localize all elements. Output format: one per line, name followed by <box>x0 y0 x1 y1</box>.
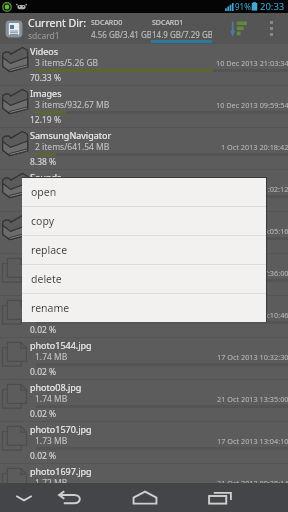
staticText: 0.02 % <box>30 324 57 336</box>
staticText: 1 Oct 2013 20:18:42 <box>221 142 288 152</box>
button[interactable]: photo1433.jpg <box>0 254 288 296</box>
staticText: copy <box>31 214 54 228</box>
button[interactable]: photo1697.jpg <box>0 464 288 506</box>
staticText: 1 Oct 2013 11:02:12 <box>221 184 288 194</box>
staticText: 1.59 % <box>30 198 57 210</box>
staticText: 91% <box>235 1 251 12</box>
staticText: 1.72 MB <box>35 477 68 489</box>
staticText: 0.02 % <box>30 492 57 504</box>
staticText: 14.9 GB/7.29 GB <box>152 29 212 40</box>
button[interactable]: rename <box>22 294 266 322</box>
staticText: Images <box>30 87 62 99</box>
button[interactable]: photo08.jpg <box>0 380 288 422</box>
staticText: 0.02 % <box>30 366 57 378</box>
button[interactable]: open <box>22 178 266 206</box>
staticText: 70.33 % <box>30 72 61 84</box>
staticText: 10 Dec 2013 09:59:54 <box>216 100 288 110</box>
staticText: SDCARD0 <box>91 18 123 28</box>
staticText: replace <box>31 243 68 257</box>
staticText: 1.74 MB <box>35 309 68 321</box>
staticText: Videos <box>30 45 59 57</box>
button[interactable]: replace <box>22 236 266 264</box>
button[interactable]: Download <box>0 212 288 254</box>
button[interactable]: copy <box>22 207 266 235</box>
staticText: photo1570.jpg <box>30 423 92 435</box>
button[interactable]: photo1501.jpg <box>0 296 288 338</box>
staticText: open <box>31 185 57 199</box>
staticText: 1.75 MB <box>35 267 68 279</box>
staticText: 1.73 MB <box>35 435 68 447</box>
button[interactable]: Home <box>126 483 164 512</box>
staticText: 0.02 % <box>30 450 57 462</box>
button[interactable]: Current Dir: <box>0 13 90 44</box>
staticText: photo08.jpg <box>30 381 82 393</box>
staticText: Sounds <box>30 171 62 183</box>
button[interactable]: Images <box>0 86 288 128</box>
staticText: 21 Oct 2013 09:28:14 <box>217 478 288 488</box>
staticText: 20:33 <box>260 0 285 13</box>
staticText: 4.56 GB/3.41 GB <box>91 29 151 40</box>
staticText: 17 Oct 2013 15:10:46 <box>217 310 288 320</box>
staticText: 3 items/5.26 GB <box>35 57 99 69</box>
button[interactable]: photo1544.jpg <box>0 338 288 380</box>
staticText: photo1697.jpg <box>30 465 92 477</box>
staticText: 1.74 MB <box>35 393 68 405</box>
staticText: photo1501.jpg <box>30 297 92 309</box>
staticText: rename <box>31 301 70 315</box>
button[interactable]: Back <box>51 483 89 512</box>
staticText: delete <box>31 272 62 286</box>
button[interactable]: SamsungNavigator <box>0 128 288 170</box>
staticText: 17 Oct 2013 13:04:10 <box>217 436 288 446</box>
staticText: SDCARD1 <box>152 18 184 28</box>
staticText: photo1544.jpg <box>30 339 92 351</box>
button[interactable]: SDCARD0 <box>90 13 151 44</box>
staticText: 12.19 % <box>30 114 61 126</box>
staticText: 5 items/121.59 MB <box>35 183 110 195</box>
button[interactable]: Sort <box>224 13 254 44</box>
button[interactable]: Sounds <box>0 170 288 212</box>
staticText: 1 items/2.31 MB <box>35 225 100 237</box>
staticText: 21 Oct 2013 13:35:00 <box>217 394 288 404</box>
button[interactable]: SDCARD1 <box>151 13 212 44</box>
staticText: 0.02 % <box>30 408 57 420</box>
staticText: Current Dir: <box>28 16 87 30</box>
button[interactable]: Videos <box>0 44 288 86</box>
staticText: 10 Dec 2013 21:03:34 <box>216 58 288 68</box>
staticText: sdcard1 <box>28 30 60 42</box>
button[interactable]: Recent apps <box>201 483 239 512</box>
staticText: 0.02 % <box>30 282 57 294</box>
button[interactable]: Hide keyboard <box>4 483 44 512</box>
staticText: 17 Oct 2013 10:32:30 <box>217 352 288 362</box>
staticText: 1.74 MB <box>35 351 68 363</box>
staticText: 2 items/641.54 MB <box>35 141 110 153</box>
button[interactable]: photo1570.jpg <box>0 422 288 464</box>
button[interactable]: delete <box>22 265 266 293</box>
staticText: 0.03 % <box>30 240 57 252</box>
staticText: 17 Oct 2013 16:05:16 <box>217 226 288 236</box>
button[interactable]: More options <box>254 13 288 44</box>
staticText: 8.38 % <box>30 156 57 168</box>
staticText: Download <box>30 213 73 225</box>
staticText: SamsungNavigator <box>30 129 112 141</box>
staticText: photo1433.jpg <box>30 255 92 267</box>
staticText: 3 items/932.67 MB <box>35 99 110 111</box>
staticText: 17 Oct 2013 17:36:00 <box>217 268 288 278</box>
